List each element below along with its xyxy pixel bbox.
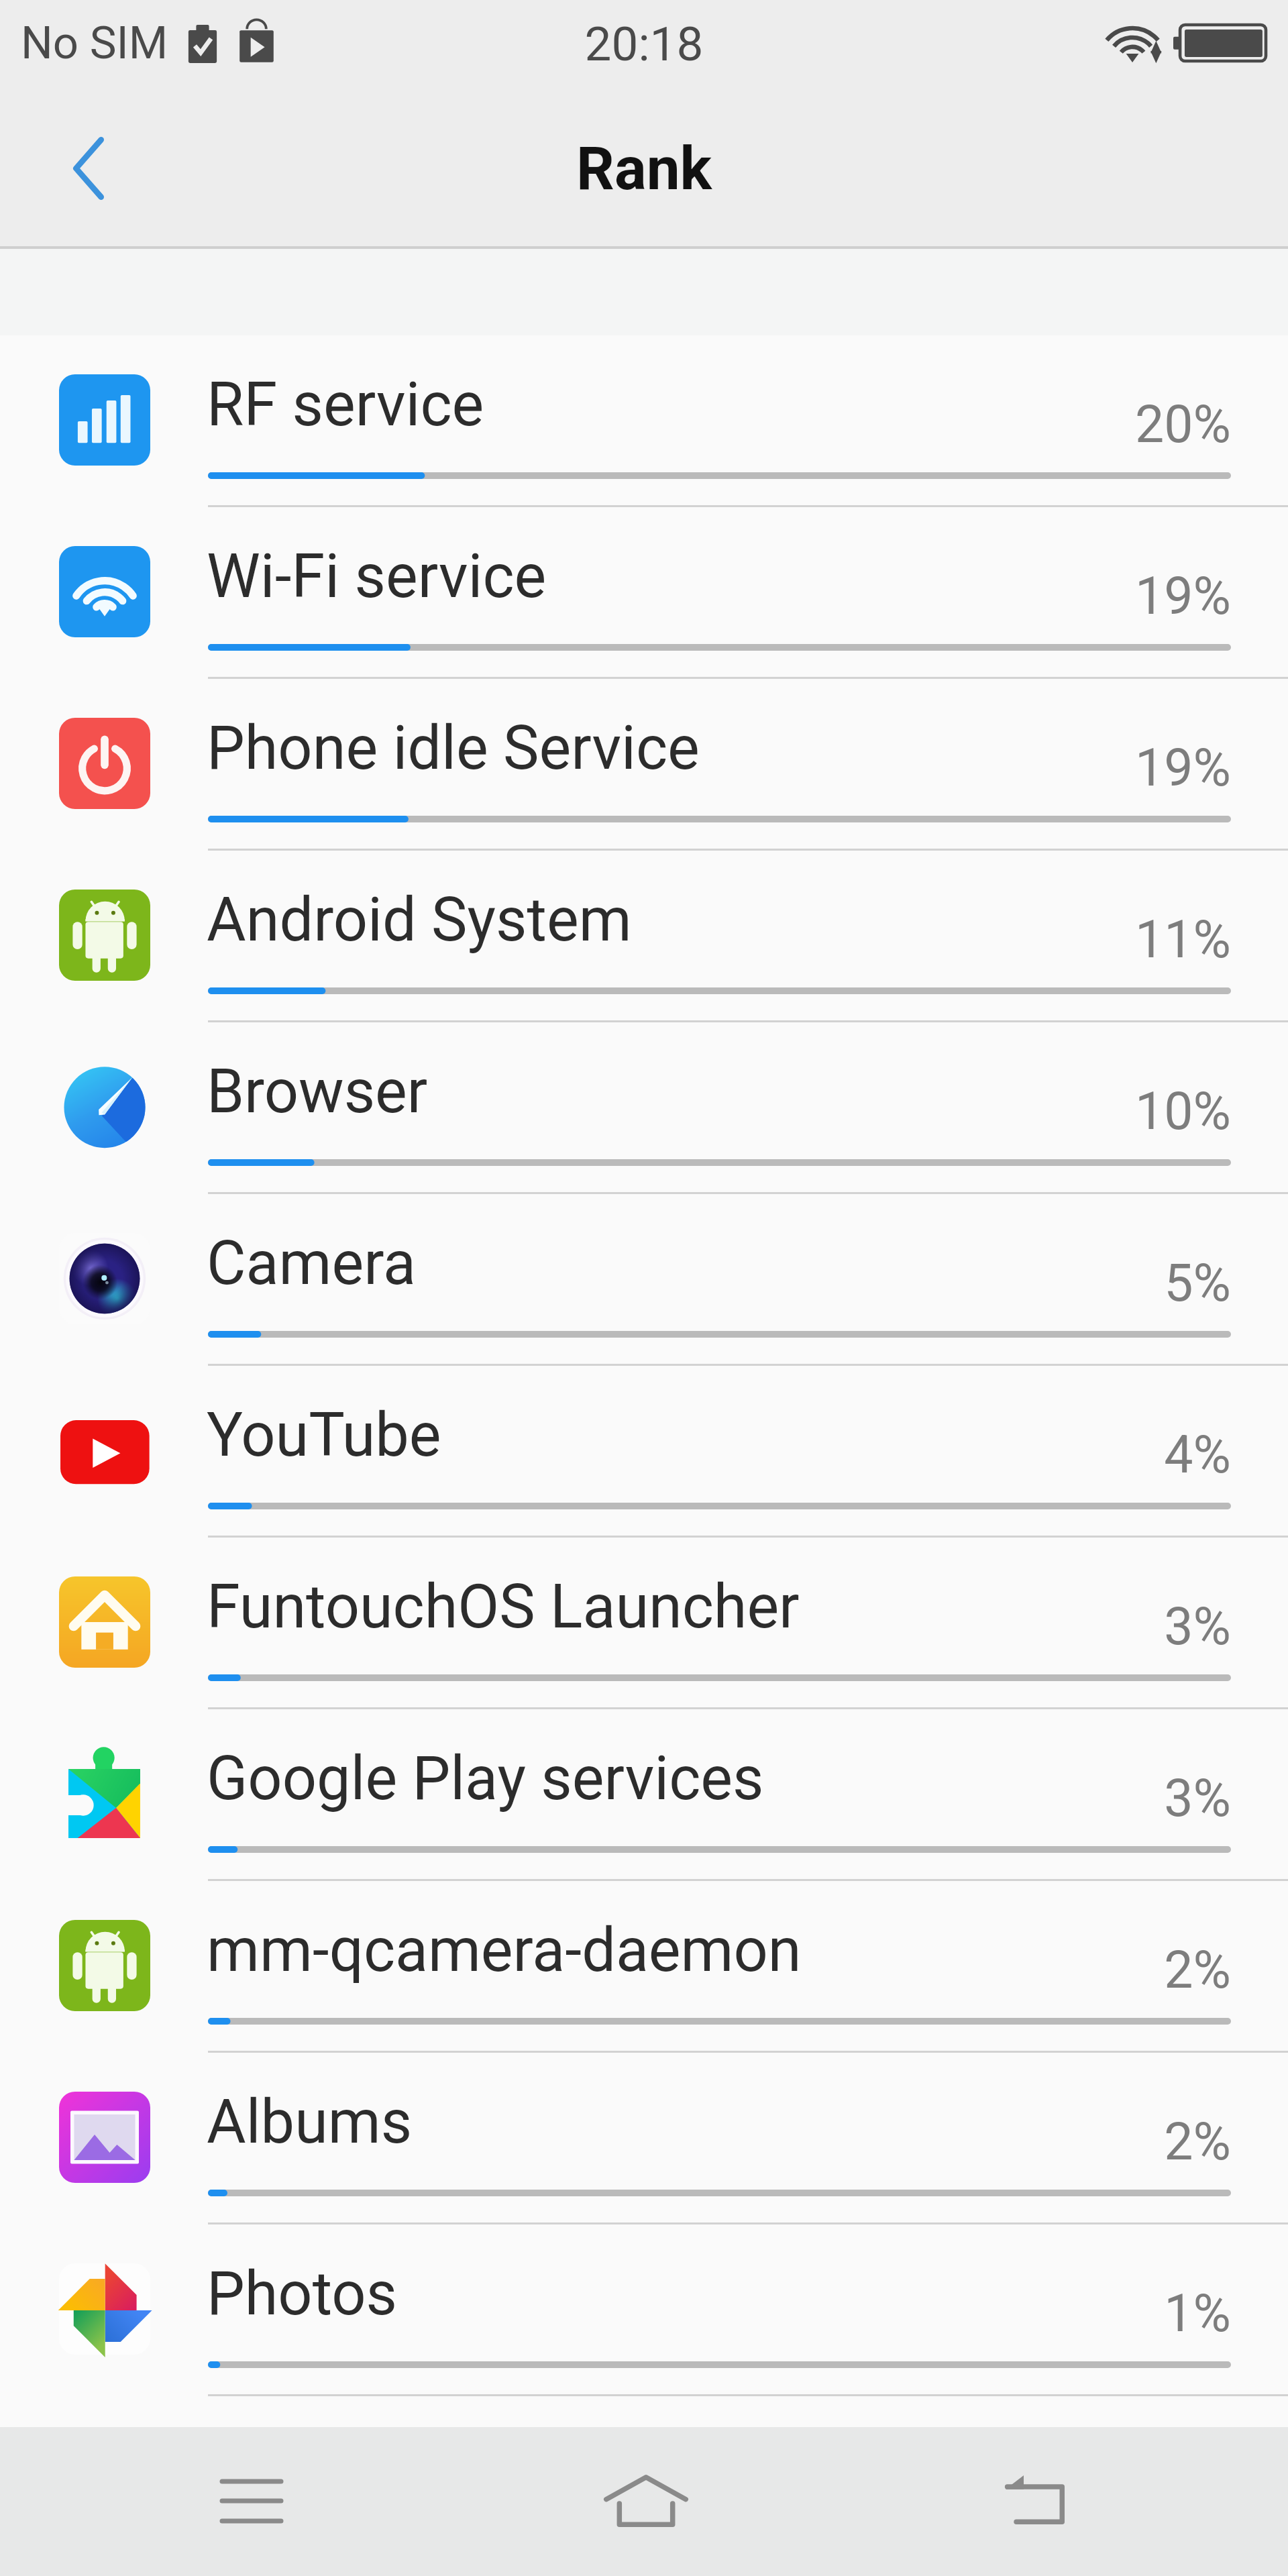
staticText: Browser — [207, 1057, 428, 1127]
staticText: 20% — [1049, 394, 1231, 455]
staticText: Albums — [207, 2087, 413, 2157]
staticText: 5% — [1049, 1253, 1231, 1313]
button[interactable]: Browser — [0, 1022, 1288, 1194]
button[interactable]: Photos — [0, 2224, 1288, 2396]
staticText: 1% — [1049, 2284, 1231, 2344]
staticText: Google Play services — [207, 1743, 764, 1814]
staticText: FuntouchOS Launcher — [207, 1572, 800, 1642]
staticText: Wi-Fi service — [207, 541, 547, 612]
staticText: YouTube — [207, 1400, 441, 1470]
button[interactable]: mm-qcamera-daemon — [0, 1881, 1288, 2053]
staticText: 20:18 — [0, 16, 1288, 72]
staticText: Photos — [207, 2259, 398, 2329]
staticText: Camera — [207, 1228, 416, 1299]
button[interactable]: Home — [572, 2442, 719, 2563]
staticText: 19% — [1049, 738, 1231, 798]
staticText: Phone idle Service — [207, 713, 700, 784]
staticText: 2% — [1049, 1940, 1231, 2000]
staticText: 11% — [1049, 910, 1231, 970]
button[interactable]: Camera — [0, 1194, 1288, 1366]
staticText: mm-qcamera-daemon — [207, 1915, 802, 1986]
staticText: 19% — [1049, 566, 1231, 627]
button[interactable]: Google Play services — [0, 1709, 1288, 1881]
staticText: No SIM — [21, 17, 168, 70]
staticText: Rank — [576, 133, 712, 203]
staticText: 10% — [1049, 1081, 1231, 1142]
button[interactable]: FuntouchOS Launcher — [0, 1538, 1288, 1709]
button[interactable]: Menu — [178, 2442, 325, 2563]
staticText: 3% — [1049, 1768, 1231, 1829]
button[interactable]: YouTube — [0, 1366, 1288, 1538]
button[interactable]: Back — [21, 113, 156, 223]
button[interactable]: Albums — [0, 2053, 1288, 2224]
staticText: RF service — [207, 370, 484, 440]
button[interactable]: Android System — [0, 851, 1288, 1022]
staticText: 3% — [1049, 1597, 1231, 1657]
button[interactable]: Back — [961, 2442, 1109, 2563]
staticText: Android System — [207, 885, 632, 955]
button[interactable]: Wi-Fi service — [0, 507, 1288, 679]
button[interactable]: Phone idle Service — [0, 679, 1288, 851]
staticText: 4% — [1049, 1425, 1231, 1485]
staticText: 2% — [1049, 2112, 1231, 2172]
button[interactable]: RF service — [0, 335, 1288, 507]
